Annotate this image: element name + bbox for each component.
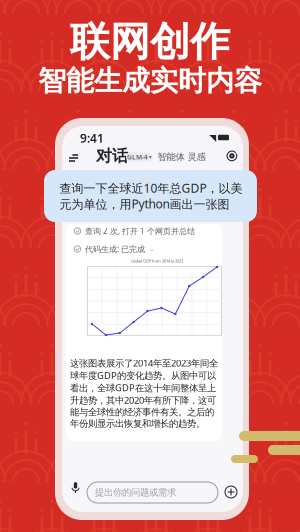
staticText: ▾ <box>149 154 152 160</box>
staticText: 查询一下全球近10年总GDP，以美元为单位，用Python画出一张图 <box>59 180 242 212</box>
button[interactable]: New chat <box>226 150 237 161</box>
button[interactable]: 智能体 <box>157 151 184 163</box>
staticText: 9:41 <box>80 130 104 146</box>
staticText: GLM-4 <box>127 153 148 161</box>
staticText: 代码生成: 已完成 <box>85 244 145 254</box>
staticText: 这张图表展示了2014年至2023年间全球年度GDP的变化趋势。从图中可以看出，… <box>70 357 218 429</box>
staticText: 对话 <box>96 146 128 166</box>
button[interactable]: Add <box>224 485 237 498</box>
staticText: Global GDP from 2014 to 2023 <box>131 258 183 264</box>
staticText: ◥ <box>209 132 216 143</box>
staticText: 提出你的问题或需求 <box>95 487 176 498</box>
button[interactable]: 灵感 <box>187 151 205 163</box>
staticText: 联网创作 <box>70 17 230 66</box>
staticText: 智能体 <box>157 151 184 163</box>
button[interactable]: 提出你的问题或需求 <box>87 482 218 503</box>
button[interactable]: Menu <box>69 154 79 162</box>
button[interactable]: Voice input <box>71 481 80 493</box>
staticText: 灵感 <box>187 151 205 163</box>
staticText: ⌄ <box>149 245 155 253</box>
staticText: 智能生成实时内容 <box>38 64 262 98</box>
button[interactable]: GLM-4 <box>126 152 153 161</box>
staticText: 查询 2 次, 打开 1 个网页并总结 <box>85 226 195 236</box>
